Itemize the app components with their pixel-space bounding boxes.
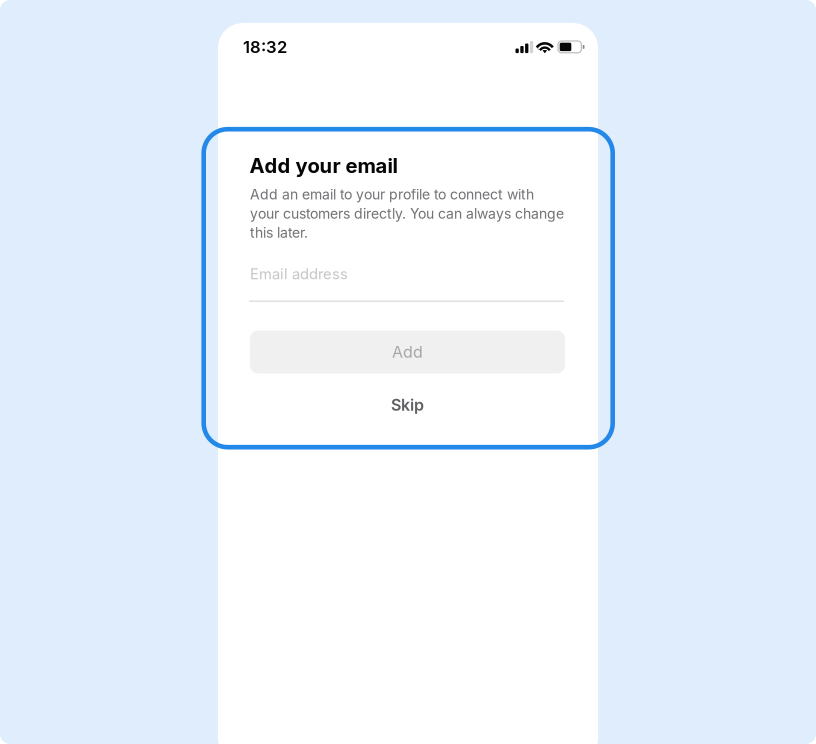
staticText: 18:32 [243, 37, 287, 57]
staticText: Email address [250, 265, 348, 283]
staticText: Add [392, 342, 423, 362]
staticText: Add an email to your profile to connect … [250, 186, 564, 241]
button[interactable]: Email address [249, 265, 564, 313]
button[interactable]: Add [250, 330, 565, 373]
button[interactable]: Skip [250, 394, 565, 416]
staticText: Add your email [249, 153, 397, 178]
staticText: Skip [391, 395, 424, 415]
